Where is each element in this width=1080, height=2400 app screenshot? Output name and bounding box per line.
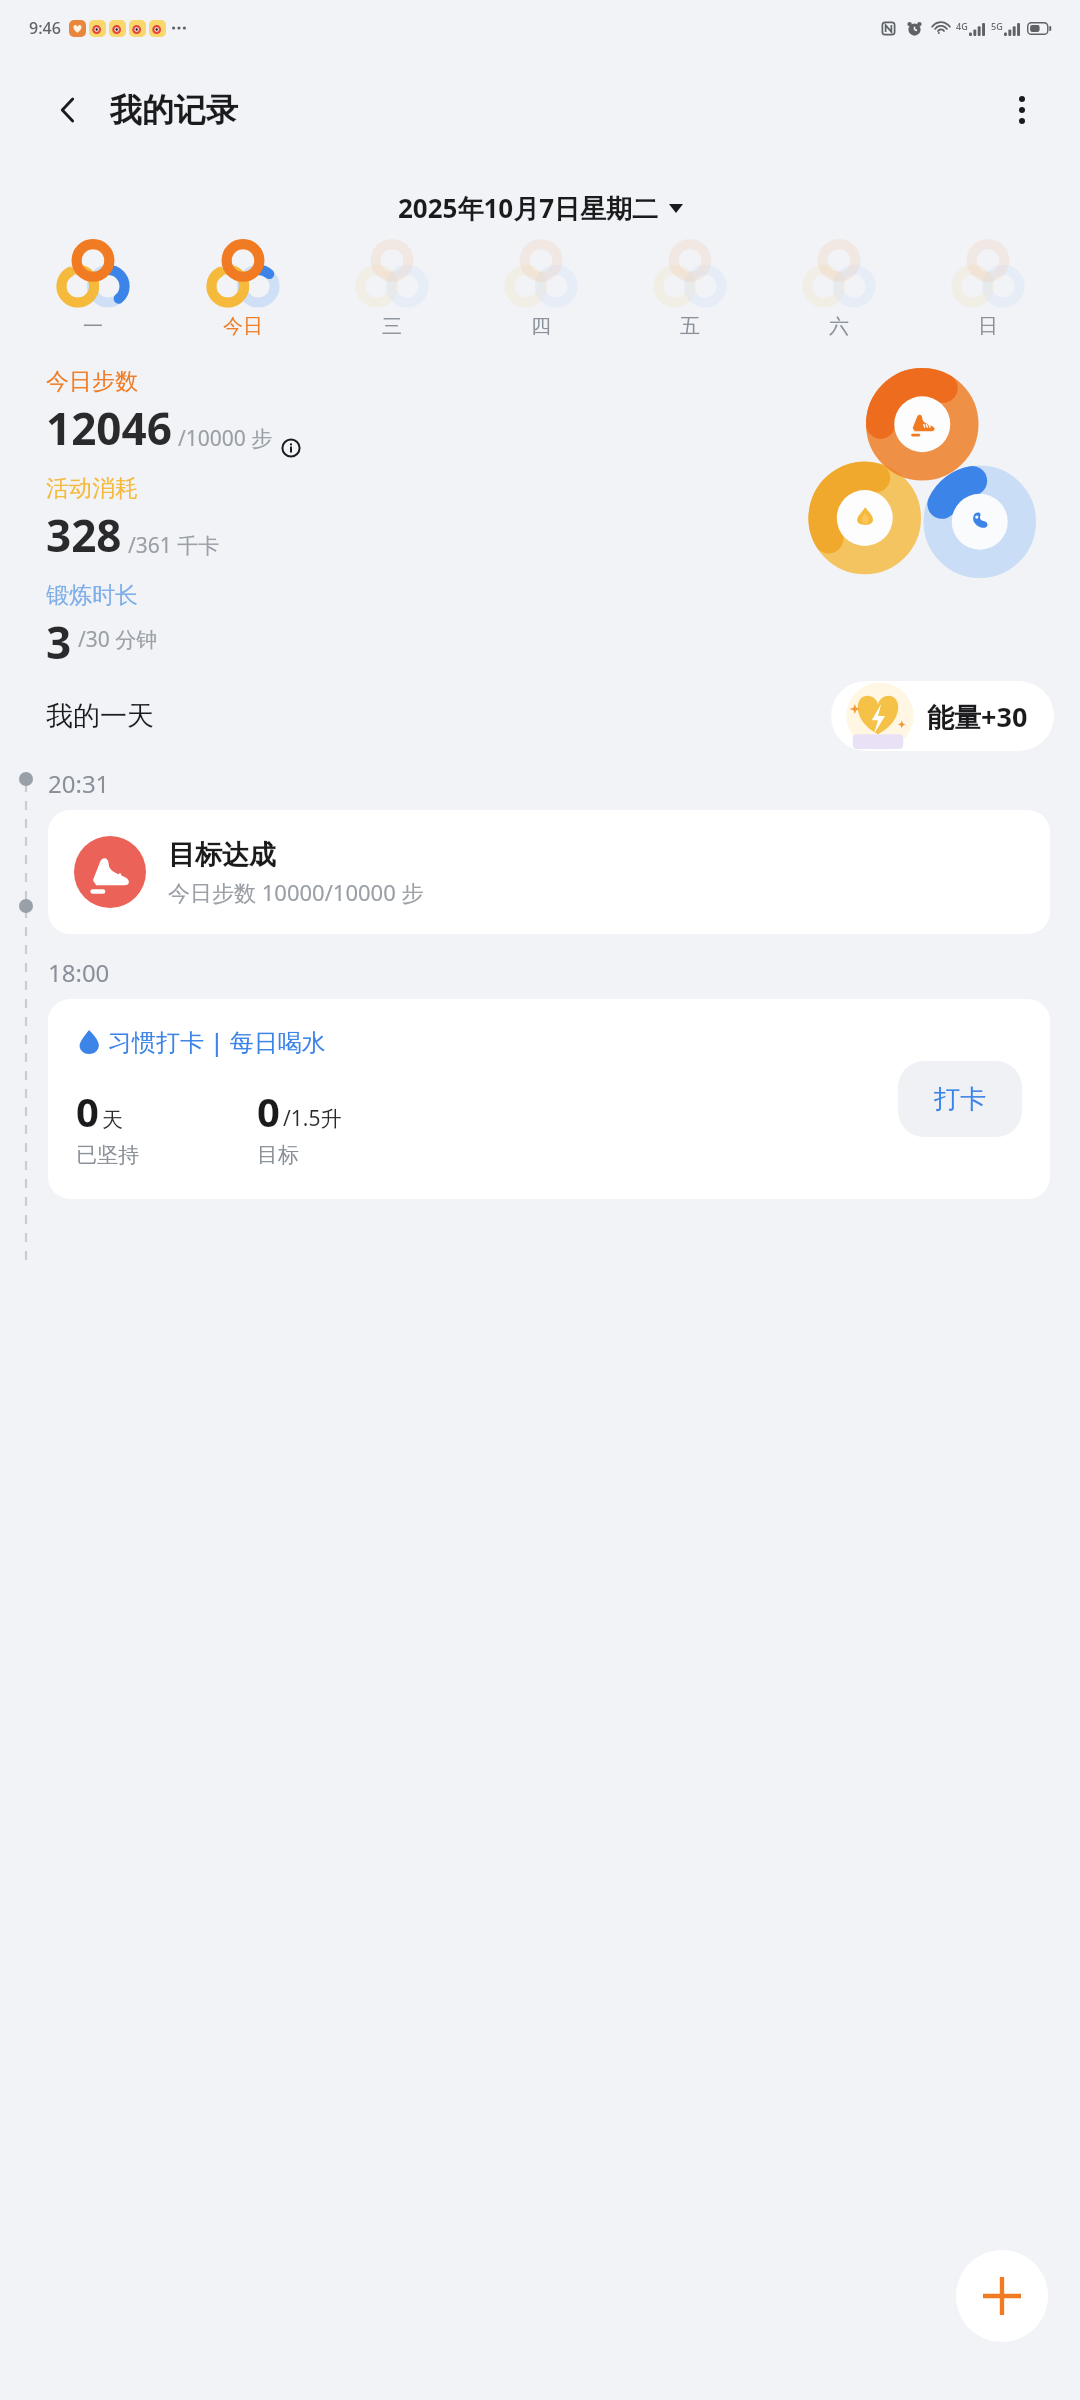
button[interactable]: 三: [317, 240, 466, 339]
staticText: /30 分钟: [78, 625, 158, 654]
button[interactable]: 日: [913, 240, 1062, 339]
staticText: 今日: [223, 314, 263, 339]
button[interactable]: Add record: [956, 2250, 1048, 2342]
button[interactable]: Back: [40, 82, 96, 138]
staticText: 锻炼时长: [46, 581, 138, 610]
button[interactable]: 一: [18, 240, 168, 339]
staticText: 六: [829, 314, 849, 339]
button[interactable]: More options: [994, 82, 1050, 138]
button[interactable]: 六: [764, 240, 913, 339]
staticText: 日: [978, 314, 998, 339]
button[interactable]: 锻炼时长: [46, 581, 158, 659]
button[interactable]: 五: [615, 240, 764, 339]
staticText: /10000 步: [178, 424, 273, 453]
staticText: 我的记录: [110, 90, 238, 130]
staticText: 5G: [991, 20, 1003, 32]
staticText: 18:00: [48, 956, 110, 989]
staticText: 三: [382, 314, 402, 339]
staticText: 目标: [257, 1142, 299, 1168]
staticText: 20:31: [48, 767, 110, 800]
button[interactable]: 习惯打卡 | 每日喝水: [48, 999, 1050, 1199]
staticText: 习惯打卡 | 每日喝水: [108, 1025, 326, 1058]
staticText: 今日步数 10000/10000 步: [168, 877, 424, 907]
staticText: 天: [102, 1107, 123, 1133]
staticText: 0: [257, 1084, 280, 1138]
staticText: 一: [83, 314, 103, 339]
staticText: /361 千卡: [128, 531, 220, 560]
staticText: 2025年10月7日星期二: [398, 190, 659, 226]
staticText: 328: [46, 505, 122, 565]
staticText: 4G: [956, 20, 968, 32]
staticText: 12046: [46, 398, 172, 458]
staticText: 9:46: [29, 17, 61, 39]
staticText: 已坚持: [76, 1142, 139, 1168]
staticText: 3: [46, 612, 72, 659]
staticText: 活动消耗: [46, 474, 138, 503]
staticText: 打卡: [934, 1083, 986, 1116]
button[interactable]: 今日步数: [46, 367, 301, 458]
staticText: 目标达成: [168, 838, 276, 872]
staticText: 0: [76, 1084, 99, 1138]
button[interactable]: [796, 363, 1046, 613]
button[interactable]: 四: [466, 240, 615, 339]
button[interactable]: 打卡: [898, 1061, 1022, 1137]
button[interactable]: 目标达成: [48, 810, 1050, 934]
button[interactable]: 活动消耗: [46, 474, 220, 565]
staticText: 能量+30: [927, 698, 1028, 735]
staticText: 五: [680, 314, 700, 339]
staticText: /1.5升: [283, 1104, 342, 1133]
button[interactable]: 2025年10月7日星期二: [0, 190, 1080, 226]
staticText: 我的一天: [46, 699, 154, 733]
staticText: 今日步数: [46, 367, 138, 396]
button[interactable]: 能量+30: [831, 681, 1054, 751]
button[interactable]: 今日: [168, 240, 317, 339]
staticText: 四: [531, 314, 551, 339]
